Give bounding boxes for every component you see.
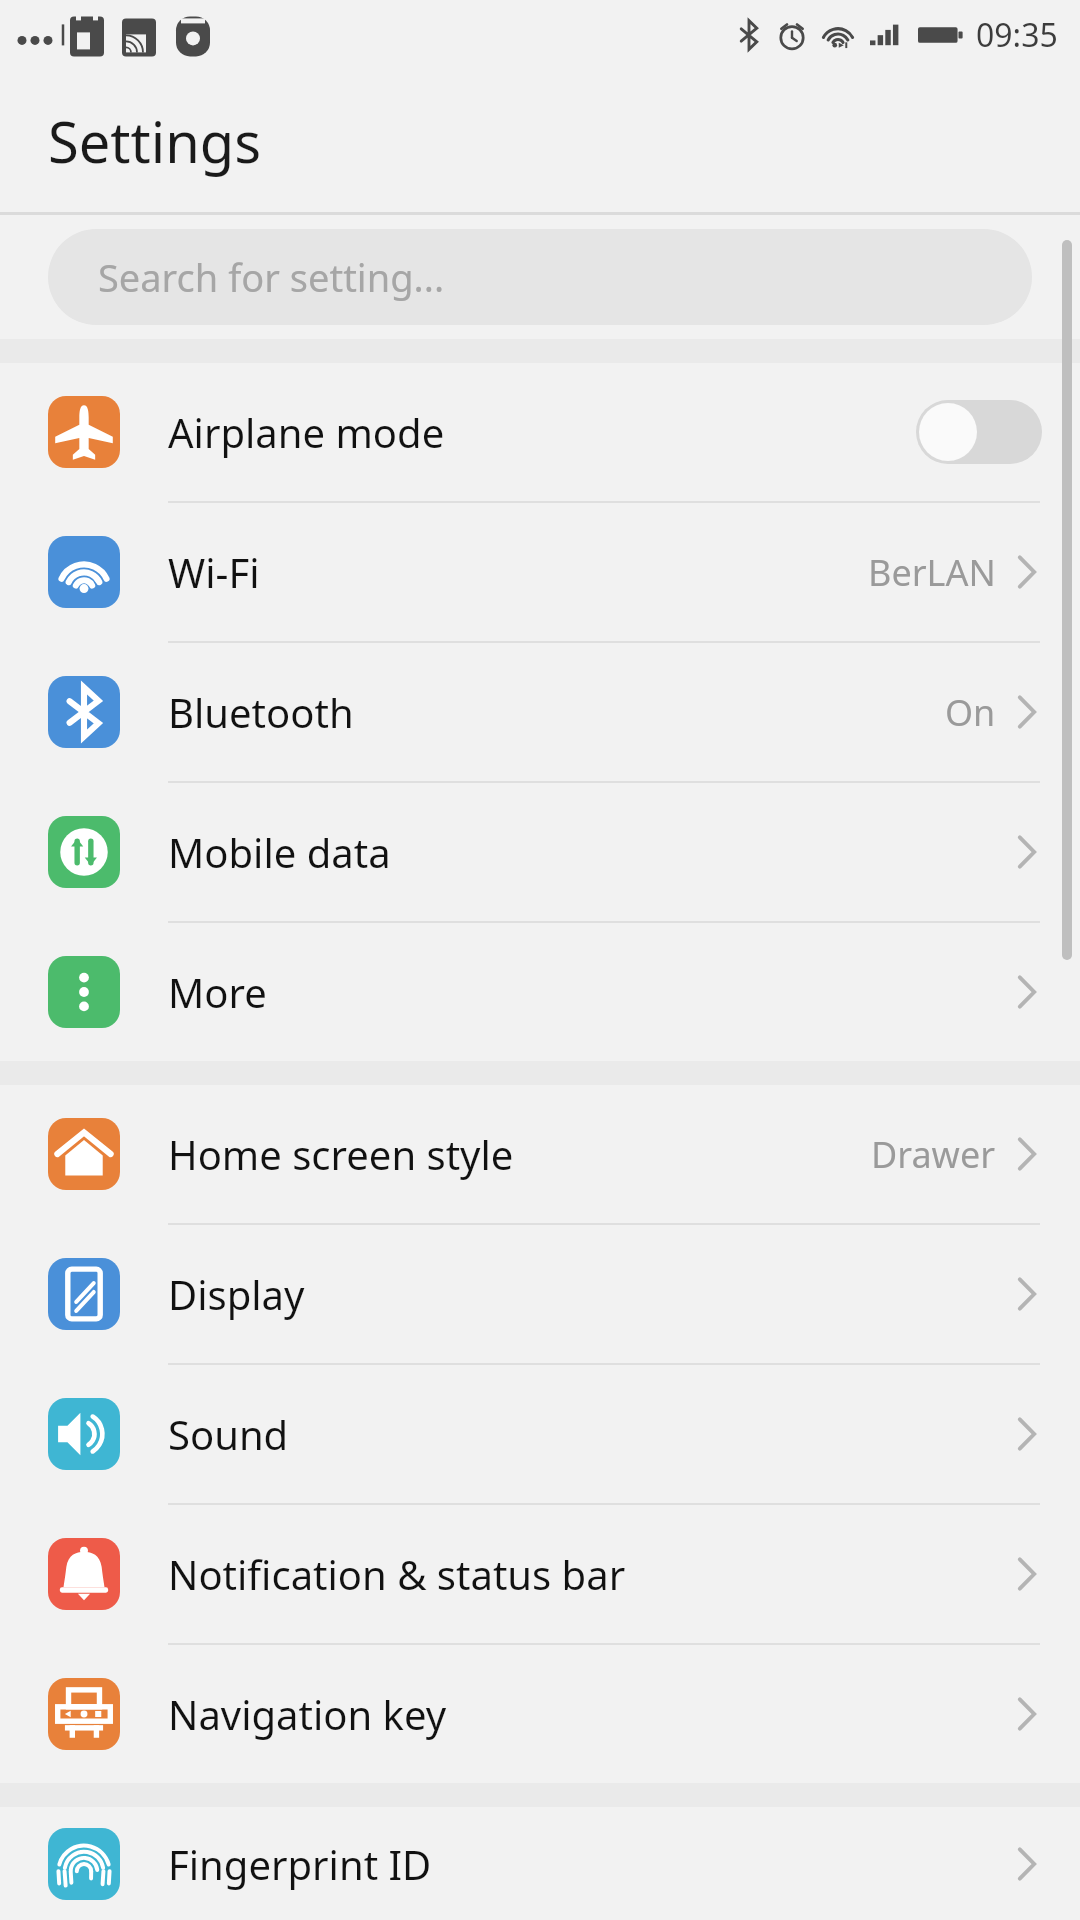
staticText: More — [168, 965, 267, 1019]
button[interactable]: Display — [0, 1225, 1080, 1365]
staticText: Home screen style — [168, 1127, 514, 1181]
staticText: Mobile data — [168, 825, 391, 879]
button[interactable]: More — [0, 923, 1080, 1061]
button[interactable]: Wi-Fi — [0, 503, 1080, 643]
staticText: On — [945, 688, 996, 737]
staticText: Settings — [48, 103, 262, 179]
staticText: Sound — [168, 1407, 289, 1461]
staticText: Bluetooth — [168, 685, 354, 739]
button[interactable]: Notification & status bar — [0, 1505, 1080, 1645]
button[interactable]: Search for setting... — [48, 229, 1032, 325]
staticText: BerLAN — [868, 548, 996, 597]
staticText: Search for setting... — [98, 251, 445, 303]
staticText: Wi-Fi — [168, 545, 260, 599]
staticText: Airplane mode — [168, 405, 445, 459]
button[interactable]: Airplane mode — [0, 363, 1080, 503]
button[interactable]: Sound — [0, 1365, 1080, 1505]
staticText: Display — [168, 1267, 305, 1321]
button[interactable]: Home screen style — [0, 1085, 1080, 1225]
button[interactable]: Fingerprint ID — [0, 1807, 1080, 1920]
staticText: Navigation key — [168, 1687, 447, 1741]
button[interactable]: Bluetooth — [0, 643, 1080, 783]
staticText: Fingerprint ID — [168, 1837, 432, 1891]
button[interactable]: Mobile data — [0, 783, 1080, 923]
button[interactable]: Navigation key — [0, 1645, 1080, 1783]
staticText: Drawer — [871, 1130, 996, 1179]
staticText: Notification & status bar — [168, 1547, 626, 1601]
button[interactable] — [916, 400, 1042, 464]
staticText: 09:35 — [976, 13, 1058, 57]
